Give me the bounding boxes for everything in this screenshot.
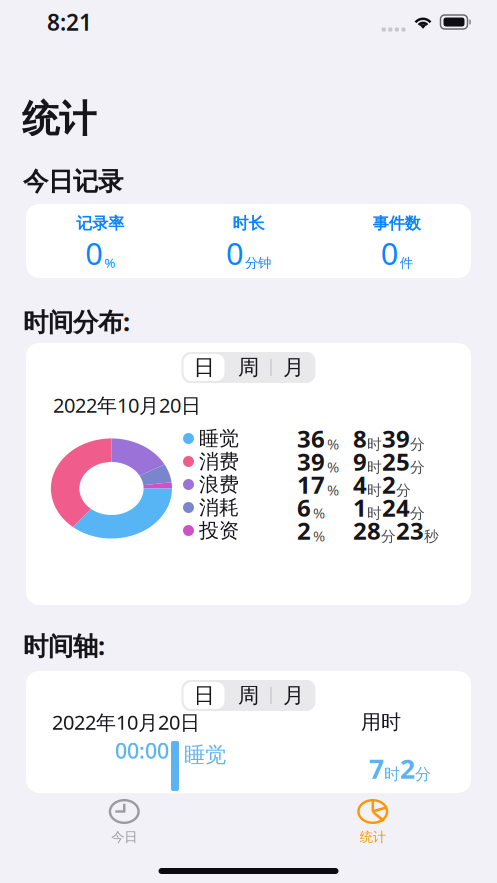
staticText: 23: [396, 515, 424, 546]
staticText: 投资: [199, 518, 239, 543]
staticText: 8: [353, 423, 367, 454]
staticText: 2: [400, 751, 415, 786]
staticText: 消费: [199, 449, 239, 474]
staticText: 睡觉: [184, 742, 226, 768]
staticText: 分钟: [245, 255, 271, 271]
staticText: 4: [353, 469, 367, 500]
staticText: 时间分布:: [23, 305, 130, 338]
staticText: 2: [297, 515, 311, 546]
button[interactable]: 统计: [248, 798, 497, 844]
staticText: 浪费: [199, 472, 239, 497]
staticText: %: [327, 457, 339, 476]
staticText: 消耗: [199, 495, 239, 520]
staticText: 今日: [111, 829, 137, 845]
staticText: 0: [85, 233, 103, 273]
staticText: 月: [283, 682, 304, 709]
staticText: 月: [283, 354, 304, 381]
staticText: 周: [238, 682, 259, 709]
staticText: 6: [297, 492, 311, 523]
staticText: 记录率: [76, 214, 124, 233]
staticText: 分: [396, 481, 411, 499]
staticText: 分: [381, 527, 396, 545]
staticText: 0: [226, 233, 244, 273]
staticText: 时: [367, 481, 382, 499]
button[interactable]: 月: [271, 352, 315, 383]
staticText: 8:21: [47, 7, 92, 37]
staticText: 时: [367, 435, 382, 453]
staticText: 分: [410, 435, 425, 453]
staticText: 00:00: [115, 736, 169, 765]
staticText: 用时: [361, 710, 401, 734]
staticText: 件: [400, 255, 413, 271]
button[interactable]: 日: [181, 352, 226, 383]
staticText: 36: [297, 423, 325, 454]
staticText: 时间轴:: [23, 629, 105, 662]
staticText: 今日记录: [23, 166, 123, 197]
staticText: 17: [297, 469, 325, 500]
staticText: %: [327, 434, 339, 453]
staticText: 睡觉: [199, 426, 239, 451]
staticText: 分: [415, 764, 431, 784]
staticText: 周: [238, 354, 259, 381]
staticText: 日: [193, 354, 214, 381]
staticText: 24: [382, 492, 410, 523]
staticText: 2022年10月20日: [53, 392, 201, 418]
staticText: 2022年10月20日: [52, 709, 200, 735]
button[interactable]: 周: [226, 352, 270, 383]
staticText: 1: [353, 492, 367, 523]
staticText: %: [313, 503, 325, 522]
button[interactable]: 今日: [0, 798, 248, 844]
button[interactable]: 月: [271, 680, 315, 711]
staticText: 时: [367, 458, 382, 476]
staticText: %: [104, 254, 115, 271]
staticText: %: [327, 480, 339, 499]
staticText: 秒: [424, 527, 439, 545]
staticText: 时: [384, 764, 400, 784]
button[interactable]: 日: [181, 680, 226, 711]
staticText: 25: [382, 446, 410, 477]
staticText: 统计: [360, 829, 386, 845]
staticText: 9: [353, 446, 367, 477]
staticText: 2: [382, 469, 396, 500]
button[interactable]: 周: [226, 680, 270, 711]
staticText: 时: [367, 504, 382, 522]
staticText: %: [313, 526, 325, 545]
staticText: 28: [353, 515, 381, 546]
staticText: 时长: [232, 214, 264, 233]
staticText: 事件数: [373, 214, 421, 233]
staticText: 39: [382, 423, 410, 454]
staticText: 分: [410, 458, 425, 476]
staticText: 0: [381, 233, 399, 273]
staticText: 分: [410, 504, 425, 522]
staticText: 统计: [22, 96, 96, 142]
staticText: 7: [369, 751, 384, 786]
staticText: 39: [297, 446, 325, 477]
staticText: 日: [193, 682, 214, 709]
